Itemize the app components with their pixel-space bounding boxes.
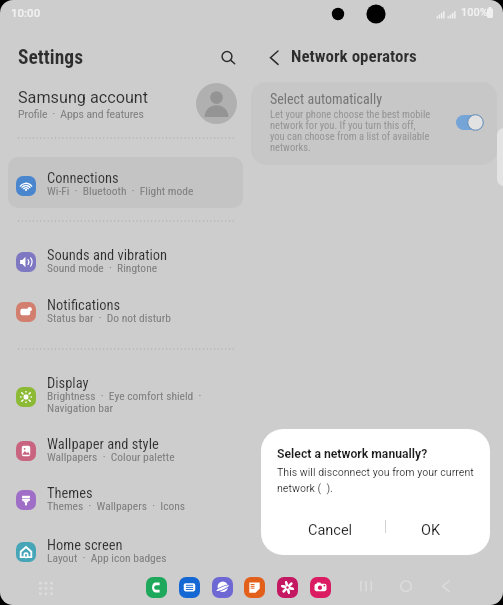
staticText: This will disconnect you from your curre… bbox=[277, 466, 474, 495]
staticText: Themes bbox=[47, 485, 93, 502]
staticText: Brightness · Eye comfort shield · Naviga… bbox=[47, 389, 202, 415]
button[interactable]: Cancel bbox=[283, 511, 377, 549]
button[interactable]: browser bbox=[212, 577, 233, 598]
button[interactable]: store bbox=[277, 577, 298, 598]
staticText: Display bbox=[47, 375, 89, 392]
button[interactable]: camera bbox=[310, 577, 331, 598]
button[interactable] bbox=[0, 475, 253, 525]
button[interactable] bbox=[0, 527, 253, 577]
button[interactable]: Search bbox=[211, 40, 244, 73]
button[interactable] bbox=[0, 366, 253, 428]
button[interactable]: Back bbox=[253, 40, 287, 74]
staticText: Network operators bbox=[291, 46, 417, 66]
staticText: Wi-Fi · Bluetooth · Flight mode bbox=[47, 184, 194, 197]
button[interactable]: phone bbox=[146, 577, 167, 598]
staticText: Connections bbox=[47, 170, 119, 187]
staticText: Home screen bbox=[47, 537, 123, 554]
staticText: Let your phone choose the best mobile ne… bbox=[270, 108, 431, 154]
button[interactable]: notes bbox=[244, 577, 265, 598]
staticText: Themes · Wallpapers · Icons bbox=[47, 499, 186, 512]
button[interactable]: msg bbox=[179, 577, 200, 598]
staticText: Select automatically bbox=[270, 91, 382, 107]
button[interactable] bbox=[251, 82, 497, 165]
staticText: Status bar · Do not disturb bbox=[47, 311, 171, 324]
button[interactable]: OK bbox=[385, 511, 477, 549]
button[interactable] bbox=[0, 426, 253, 476]
button[interactable]: Home bbox=[392, 574, 420, 602]
staticText: Wallpapers · Colour palette bbox=[47, 450, 175, 463]
button[interactable]: Apps bbox=[31, 574, 59, 602]
staticText: Sounds and vibration bbox=[47, 247, 168, 264]
button[interactable] bbox=[0, 80, 253, 130]
staticText: Cancel bbox=[308, 522, 353, 539]
staticText: Settings bbox=[18, 46, 83, 69]
button[interactable] bbox=[0, 237, 253, 287]
staticText: Profile · Apps and features bbox=[18, 108, 144, 120]
button[interactable]: Recents bbox=[352, 574, 380, 602]
staticText: 10:00 bbox=[11, 6, 41, 19]
button[interactable] bbox=[0, 287, 253, 337]
staticText: OK bbox=[421, 522, 441, 539]
staticText: Samsung account bbox=[18, 88, 149, 107]
button[interactable] bbox=[8, 157, 243, 208]
staticText: 100% bbox=[461, 6, 488, 19]
staticText: Layout · App icon badges bbox=[47, 551, 167, 564]
staticText: Select a network manually? bbox=[277, 447, 428, 461]
staticText: Sound mode · Ringtone bbox=[47, 261, 158, 274]
staticText: Notifications bbox=[47, 297, 121, 314]
button[interactable]: Select automatically toggle bbox=[453, 112, 486, 133]
staticText: Wallpaper and style bbox=[47, 436, 159, 453]
